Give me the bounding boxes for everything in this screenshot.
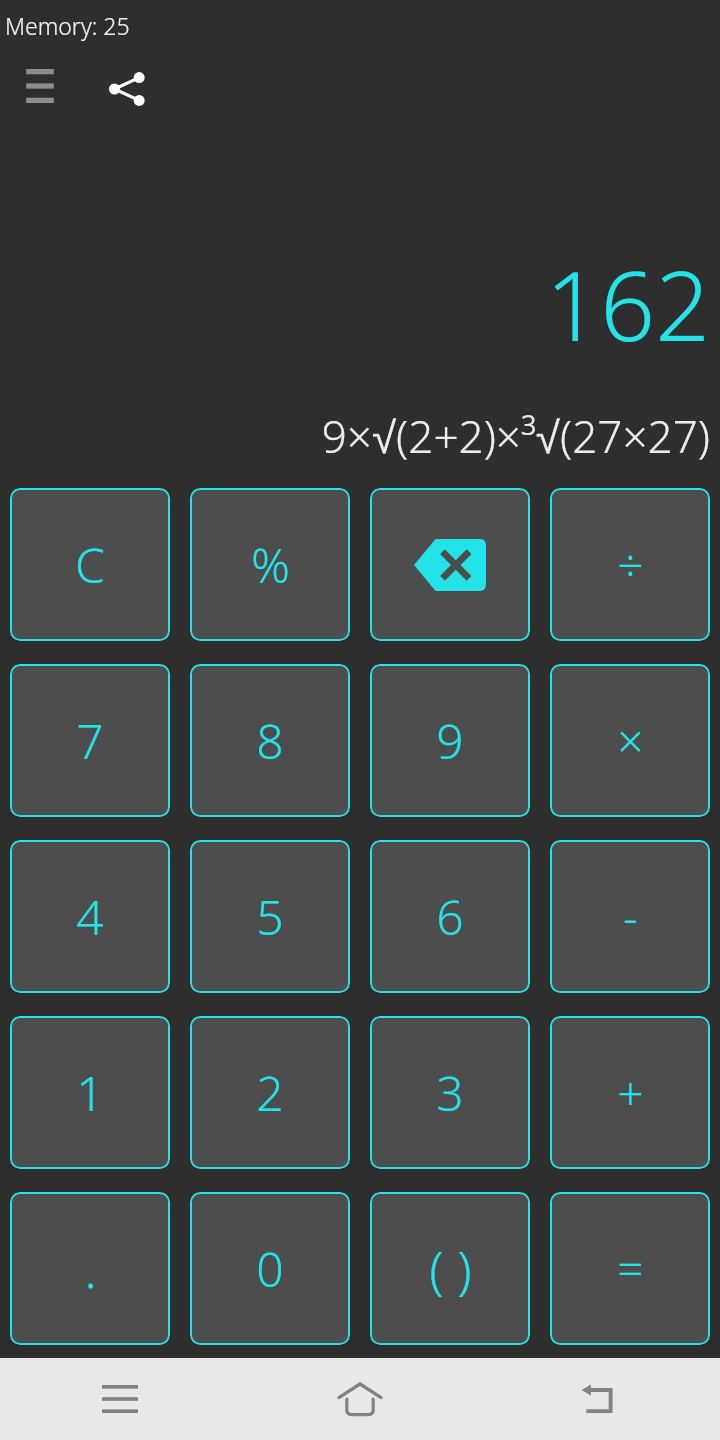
staticText: 9×√(2+2)×³√(27×27) xyxy=(321,406,710,466)
staticText: 6 xyxy=(436,884,464,949)
button[interactable]: ( ) xyxy=(370,1192,530,1345)
button[interactable]: 9 xyxy=(370,664,530,817)
button[interactable]: 6 xyxy=(370,840,530,993)
button[interactable]: Menu xyxy=(14,60,66,112)
staticText: % xyxy=(251,532,290,597)
staticText: 1 xyxy=(76,1060,104,1125)
staticText: 8 xyxy=(256,708,284,773)
button[interactable]: 0 xyxy=(190,1192,350,1345)
button[interactable]: ÷ xyxy=(550,488,710,641)
button[interactable]: Share xyxy=(98,60,156,118)
staticText: × xyxy=(617,709,644,772)
staticText: - xyxy=(623,885,638,948)
button[interactable]: 2 xyxy=(190,1016,350,1169)
button[interactable]: Back xyxy=(480,1358,720,1440)
button[interactable]: Home xyxy=(240,1358,480,1440)
button[interactable]: % xyxy=(190,488,350,641)
staticText: + xyxy=(617,1061,644,1124)
staticText: 5 xyxy=(256,884,284,949)
staticText: 0 xyxy=(256,1236,284,1301)
button[interactable]: - xyxy=(550,840,710,993)
button[interactable]: Backspace xyxy=(370,488,530,641)
staticText: 4 xyxy=(76,884,104,949)
staticText: 162 xyxy=(545,238,710,369)
button[interactable]: + xyxy=(550,1016,710,1169)
staticText: 9 xyxy=(436,708,464,773)
staticText: ÷ xyxy=(617,533,644,596)
button[interactable]: 1 xyxy=(10,1016,170,1169)
staticText: . xyxy=(84,1235,97,1303)
button[interactable]: Recents xyxy=(0,1358,240,1440)
staticText: Memory: 25 xyxy=(5,10,130,41)
staticText: 7 xyxy=(76,708,104,773)
button[interactable]: 8 xyxy=(190,664,350,817)
button[interactable]: . xyxy=(10,1192,170,1345)
button[interactable]: 5 xyxy=(190,840,350,993)
button[interactable]: = xyxy=(550,1192,710,1345)
staticText: 2 xyxy=(256,1060,284,1125)
button[interactable]: C xyxy=(10,488,170,641)
button[interactable]: 7 xyxy=(10,664,170,817)
button[interactable]: × xyxy=(550,664,710,817)
staticText: 3 xyxy=(436,1060,464,1125)
staticText: = xyxy=(617,1237,644,1300)
staticText: ( ) xyxy=(429,1233,472,1304)
button[interactable]: 4 xyxy=(10,840,170,993)
staticText: C xyxy=(75,532,105,597)
button[interactable]: 3 xyxy=(370,1016,530,1169)
